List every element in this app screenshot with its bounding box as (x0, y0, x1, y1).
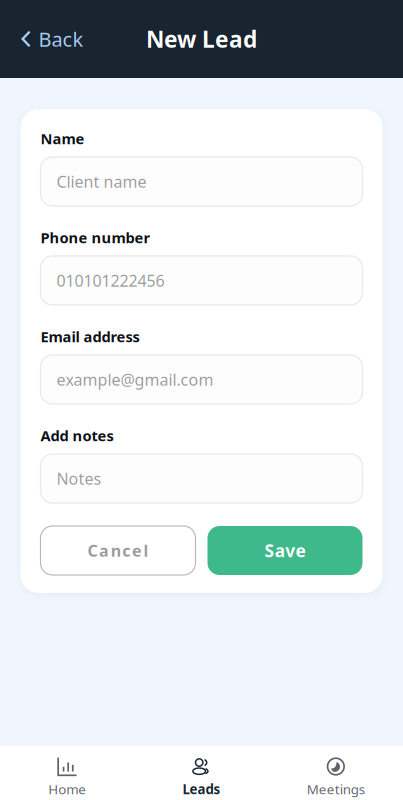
staticText: Client name (56, 171, 146, 192)
staticText: Name (40, 129, 84, 148)
staticText: 010101222456 (56, 270, 164, 291)
staticText: Notes (56, 468, 101, 489)
staticText: example@gmail.com (56, 369, 213, 390)
staticText: Home (48, 780, 86, 798)
staticText: Meetings (307, 780, 365, 798)
staticText: Email address (40, 327, 139, 346)
staticText: Phone number (40, 228, 150, 247)
staticText: Add notes (40, 426, 113, 445)
staticText: Leads (182, 780, 220, 798)
button[interactable]: Cancel (40, 526, 195, 575)
button[interactable]: Leads (134, 757, 269, 795)
staticText: Cancel (87, 540, 148, 561)
button[interactable]: Save (207, 526, 362, 575)
button[interactable]: Home (0, 757, 134, 795)
staticText: Save (264, 539, 306, 562)
button[interactable]: Back (0, 17, 95, 61)
button[interactable]: Meetings (269, 757, 403, 795)
staticText: Back (38, 26, 83, 52)
staticText: New Lead (146, 24, 257, 54)
